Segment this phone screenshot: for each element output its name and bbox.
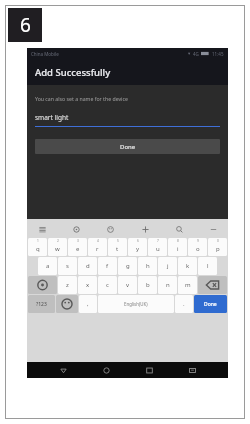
button[interactable]: 3 [68, 238, 87, 256]
staticText: You can also set a name for the device [35, 95, 128, 102]
button[interactable]: 5 [108, 238, 127, 256]
button[interactable]: Hide keyboard [56, 363, 70, 377]
staticText: 7 [157, 239, 159, 243]
button[interactable]: Home [142, 363, 156, 377]
button[interactable]: n [158, 276, 177, 294]
staticText: 3 [77, 239, 79, 243]
staticText: b [146, 281, 150, 289]
button[interactable]: x [78, 276, 97, 294]
button[interactable]: 1 [28, 238, 47, 256]
staticText: d [86, 262, 90, 270]
staticText: 11:45 [212, 51, 224, 57]
staticText: . [183, 300, 185, 308]
staticText: w [55, 245, 60, 253]
staticText: 1 [37, 239, 39, 243]
staticText: k [186, 262, 190, 270]
staticText: 5 [117, 239, 119, 243]
staticText: smart light [35, 113, 69, 122]
staticText: 4 [97, 239, 99, 243]
staticText: y [136, 245, 140, 253]
staticText: m [185, 281, 191, 289]
button[interactable]: Move cursor [138, 222, 152, 236]
button[interactable]: b [138, 276, 157, 294]
button[interactable]: v [118, 276, 137, 294]
button[interactable]: 8 [168, 238, 187, 256]
button[interactable]: Clipboard [35, 222, 49, 236]
button[interactable]: 4 [88, 238, 107, 256]
staticText: e [76, 245, 80, 253]
staticText: s [66, 262, 69, 270]
staticText: a [46, 262, 50, 270]
button[interactable]: z [58, 276, 77, 294]
staticText: 0 [217, 239, 219, 243]
staticText: o [196, 245, 200, 253]
button[interactable]: Recent apps [185, 363, 199, 377]
button[interactable]: . [175, 295, 193, 313]
staticText: 6 [137, 239, 139, 243]
button[interactable]: 2 [48, 238, 67, 256]
staticText: j [167, 262, 169, 270]
button[interactable]: s [58, 257, 77, 275]
staticText: z [66, 281, 69, 289]
button[interactable]: Search [172, 222, 186, 236]
staticText: Add Successfully [35, 66, 111, 79]
staticText: Done [204, 301, 217, 308]
staticText: t [116, 245, 119, 253]
button[interactable]: a [38, 257, 57, 275]
button[interactable]: k [178, 257, 197, 275]
staticText: , [87, 300, 89, 308]
staticText: Done [120, 143, 136, 151]
button[interactable]: 7 [148, 238, 167, 256]
button[interactable]: l [198, 257, 217, 275]
staticText: g [126, 262, 130, 270]
button[interactable]: Done [35, 139, 220, 154]
button[interactable]: , [79, 295, 97, 313]
button[interactable]: c [98, 276, 117, 294]
staticText: h [146, 262, 150, 270]
button[interactable]: h [138, 257, 157, 275]
button[interactable]: 6 [128, 238, 147, 256]
staticText: q [36, 245, 40, 253]
staticText: 4G [193, 51, 199, 57]
button[interactable]: g [118, 257, 137, 275]
button[interactable]: Backspace [198, 276, 227, 294]
staticText: 8 [177, 239, 179, 243]
button[interactable]: Stickers [103, 222, 117, 236]
staticText: ▾ [188, 51, 191, 56]
button[interactable]: smart light [35, 113, 220, 127]
button[interactable]: Back [99, 363, 113, 377]
button[interactable]: 0 [208, 238, 227, 256]
staticText: x [86, 281, 90, 289]
staticText: p [216, 245, 220, 253]
button[interactable]: Shift [28, 276, 57, 294]
button[interactable]: ?123 [28, 295, 55, 313]
button[interactable]: m [178, 276, 197, 294]
staticText: v [126, 281, 130, 289]
staticText: 6 [20, 12, 31, 38]
staticText: 2 [57, 239, 59, 243]
button[interactable]: Settings [69, 222, 83, 236]
staticText: c [106, 281, 109, 289]
staticText: China Mobile [31, 51, 59, 57]
button[interactable]: Emoji [56, 295, 78, 313]
button[interactable]: More [206, 222, 220, 236]
staticText: n [166, 281, 170, 289]
staticText: f [106, 262, 109, 270]
button[interactable]: j [158, 257, 177, 275]
staticText: l [207, 262, 209, 270]
button[interactable]: f [98, 257, 117, 275]
staticText: English(UK) [124, 301, 148, 307]
staticText: r [96, 245, 99, 253]
staticText: i [177, 245, 179, 253]
staticText: 9 [197, 239, 199, 243]
button[interactable]: d [78, 257, 97, 275]
button[interactable]: 9 [188, 238, 207, 256]
staticText: ?123 [36, 301, 47, 308]
button[interactable]: English(UK) [98, 295, 174, 313]
staticText: u [156, 245, 160, 253]
button[interactable]: Done [194, 295, 227, 313]
